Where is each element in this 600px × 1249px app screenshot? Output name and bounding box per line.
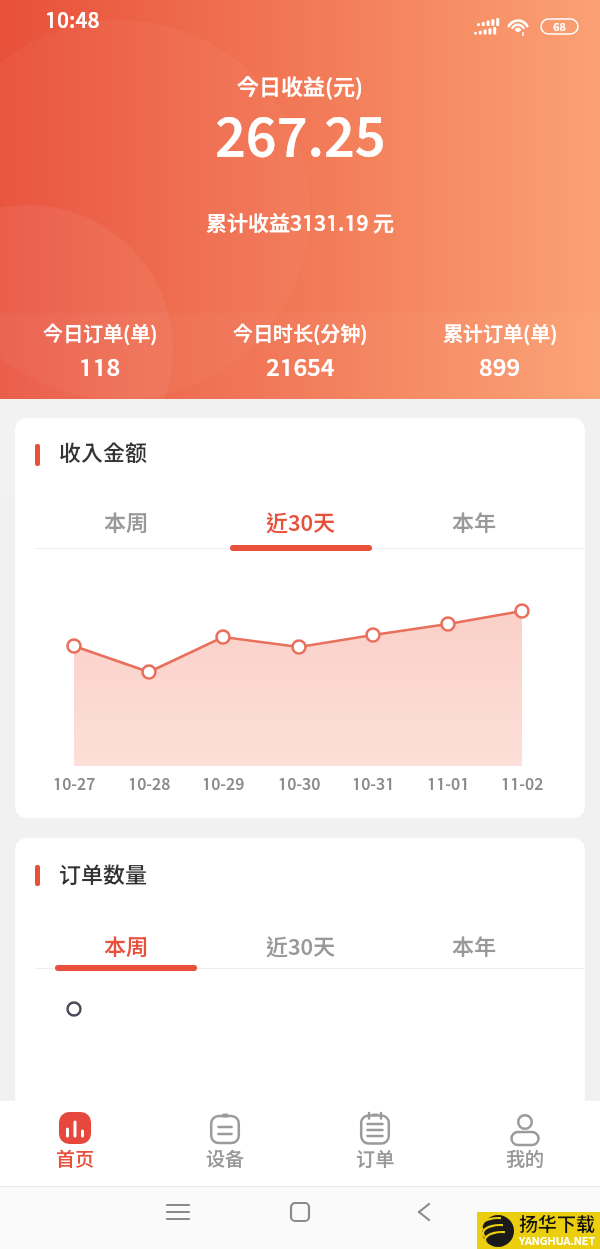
staticText: 10-27 <box>53 774 96 793</box>
staticText: 今日时长(分钟) <box>233 322 368 346</box>
staticText: 11-02 <box>501 774 544 793</box>
staticText: 扬华下载 <box>519 1213 596 1235</box>
staticText: 近30天 <box>266 510 336 536</box>
staticText: 收入金额 <box>59 440 148 466</box>
staticText: 11-01 <box>427 774 470 793</box>
staticText: 118 <box>79 353 121 381</box>
staticText: 本年 <box>452 934 497 960</box>
staticText: 我的 <box>506 1148 545 1170</box>
button[interactable]: 近30天 <box>231 506 371 540</box>
button[interactable]: 我的 <box>450 1101 600 1186</box>
staticText: 21654 <box>266 353 335 381</box>
staticText: 本周 <box>104 510 149 536</box>
staticText: 订单数量 <box>59 862 148 888</box>
button[interactable]: 本年 <box>404 930 544 964</box>
staticText: 10-31 <box>352 774 395 793</box>
staticText: 订单 <box>356 1148 395 1170</box>
staticText: 本年 <box>452 510 497 536</box>
staticText: 10-28 <box>128 774 171 793</box>
staticText: 今日收益(元) <box>237 74 363 100</box>
staticText: 设备 <box>206 1148 245 1170</box>
staticText: 267.25 <box>215 104 386 168</box>
staticText: 首页 <box>56 1148 95 1170</box>
button[interactable]: 本年 <box>404 506 544 540</box>
staticText: 10:48 <box>45 8 100 33</box>
staticText: 10-30 <box>278 774 321 793</box>
button[interactable]: 首页 <box>0 1101 150 1186</box>
staticText: 899 <box>479 353 521 381</box>
staticText: 近30天 <box>266 934 336 960</box>
staticText: 10-29 <box>202 774 245 793</box>
staticText: 累计订单(单) <box>443 322 558 346</box>
staticText: 累计收益3131.19 元 <box>206 211 395 236</box>
staticText: 本周 <box>104 934 149 960</box>
staticText: 68 <box>541 20 578 33</box>
button[interactable]: 设备 <box>150 1101 300 1186</box>
button[interactable]: 本周 <box>56 930 196 964</box>
button[interactable]: 本周 <box>56 506 196 540</box>
staticText: YANGHUA.NET <box>519 1234 596 1247</box>
staticText: 今日订单(单) <box>43 322 158 346</box>
button[interactable]: 订单 <box>300 1101 450 1186</box>
button[interactable]: 近30天 <box>231 930 371 964</box>
